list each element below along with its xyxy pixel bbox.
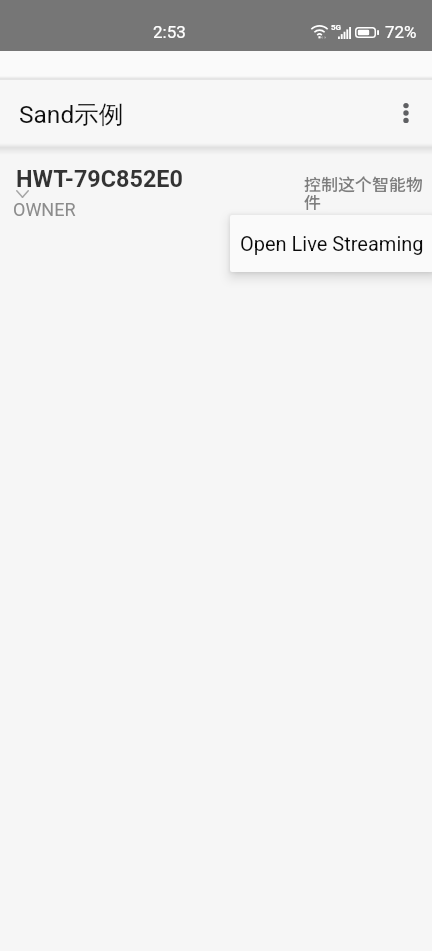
- button[interactable]: Open Live Streaming: [230, 215, 432, 272]
- staticText: 控制这个智能物件: [304, 171, 427, 214]
- staticText: 72%: [385, 22, 417, 42]
- staticText: HWT-79C852E0: [16, 165, 183, 192]
- staticText: Open Live Streaming: [240, 232, 424, 255]
- button[interactable]: More options: [382, 89, 430, 137]
- staticText: Sand示例: [19, 99, 124, 130]
- staticText: 2:53: [153, 22, 186, 42]
- staticText: OWNER: [13, 199, 76, 220]
- staticText: 5G: [331, 23, 342, 32]
